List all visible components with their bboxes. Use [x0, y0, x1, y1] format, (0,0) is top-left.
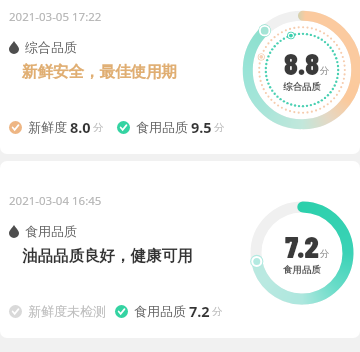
staticText: 新鲜度 [28, 119, 67, 135]
staticText: 新鲜安全，最佳使用期 [22, 62, 177, 82]
button[interactable]: 7.2 [0, 161, 360, 338]
staticText: 分 [320, 65, 330, 77]
staticText: 食用品质 [25, 223, 77, 239]
staticText: 分 [320, 248, 330, 260]
staticText: 食用品质 [283, 264, 321, 276]
staticText: 分 [214, 121, 225, 134]
staticText: 2021-03-05 17:22 [9, 9, 102, 25]
staticText: 7.2 [285, 227, 319, 264]
staticText: 综合品质 [25, 39, 77, 55]
staticText: 7.2 [189, 301, 210, 321]
staticText: 食用品质 [134, 303, 186, 319]
staticText: 8.8 [284, 44, 320, 81]
staticText: 综合品质 [283, 81, 321, 93]
staticText: 新鲜度未检测 [28, 303, 106, 319]
staticText: 油品品质良好，健康可用 [22, 246, 193, 266]
staticText: 8.0 [70, 117, 91, 137]
staticText: 分 [212, 305, 223, 318]
button[interactable]: 8.8 [0, 0, 360, 154]
staticText: 食用品质 [136, 119, 188, 135]
staticText: 9.5 [191, 117, 212, 137]
staticText: 分 [93, 121, 104, 134]
staticText: 2021-03-04 16:45 [9, 193, 102, 209]
